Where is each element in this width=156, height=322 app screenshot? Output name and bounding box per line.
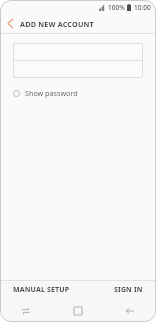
button[interactable]: Recents xyxy=(0,300,52,322)
button[interactable]: Back xyxy=(104,300,156,322)
staticText: ADD NEW ACCOUNT xyxy=(20,19,94,29)
button[interactable]: SIGN IN xyxy=(114,280,143,300)
staticText: Show password xyxy=(25,88,78,98)
staticText: 100% xyxy=(108,3,125,12)
staticText: MANUAL SETUP xyxy=(13,285,70,295)
button[interactable]: Home xyxy=(52,300,104,322)
button[interactable]: MANUAL SETUP xyxy=(13,280,70,300)
staticText: SIGN IN xyxy=(114,285,143,295)
button[interactable] xyxy=(13,61,143,78)
staticText: 10:00 xyxy=(134,3,151,12)
button[interactable]: Show password xyxy=(13,85,78,101)
button[interactable] xyxy=(13,43,143,60)
button[interactable]: Navigate up xyxy=(0,14,20,33)
